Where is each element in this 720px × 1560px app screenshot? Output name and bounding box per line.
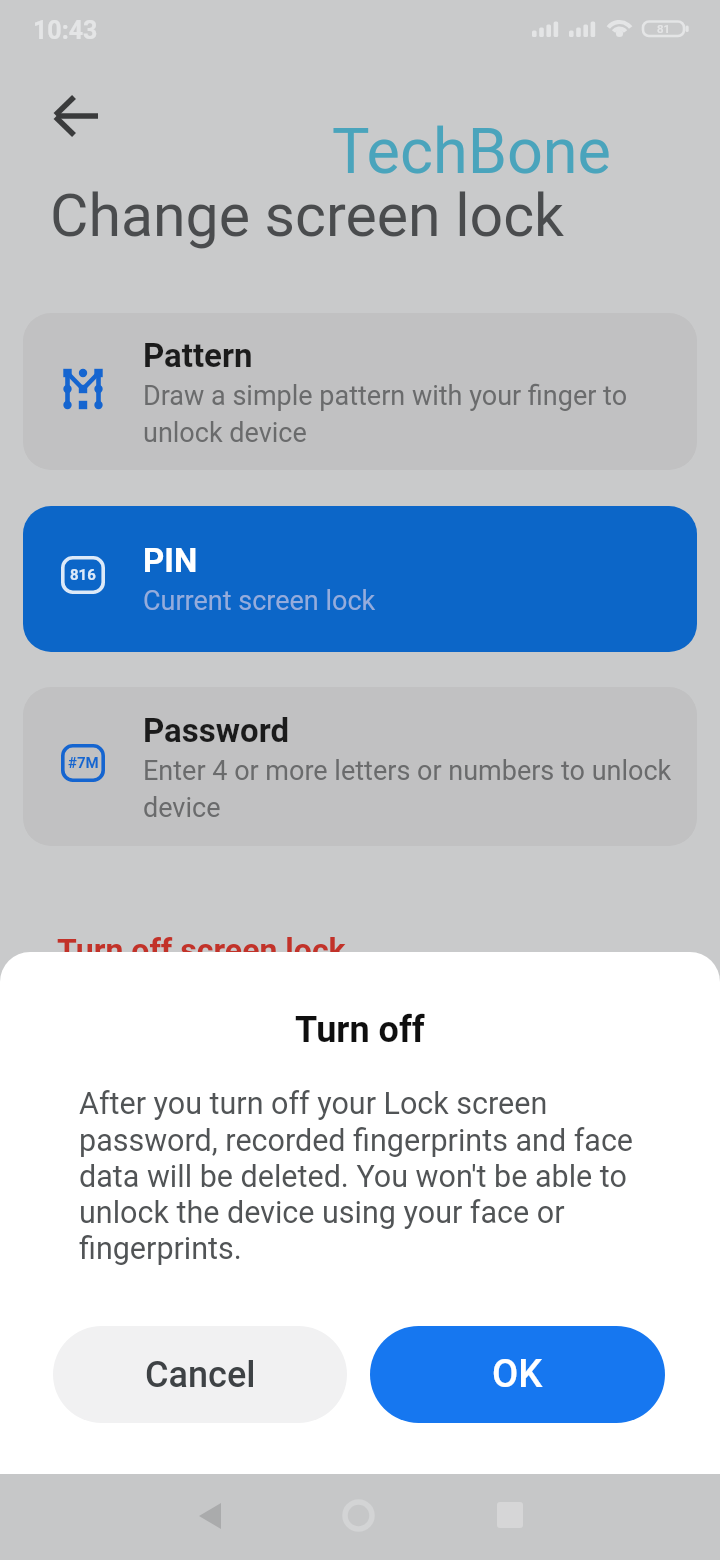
staticText: Change screen lock bbox=[50, 181, 564, 250]
staticText: Cancel bbox=[145, 1354, 256, 1396]
button[interactable] bbox=[333, 1490, 385, 1544]
staticText: After you turn off your Lock screen pass… bbox=[79, 1086, 634, 1266]
button[interactable]: Pattern bbox=[23, 313, 697, 470]
staticText: 81 bbox=[657, 22, 671, 35]
staticText: Draw a simple pattern with your finger t… bbox=[143, 380, 628, 448]
button[interactable]: OK bbox=[370, 1326, 665, 1423]
staticText: Pattern bbox=[143, 336, 253, 375]
button[interactable]: Turn off screen lock bbox=[57, 931, 346, 969]
button[interactable]: Cancel bbox=[53, 1326, 347, 1423]
staticText: Enter 4 or more letters or numbers to un… bbox=[143, 755, 672, 823]
button[interactable] bbox=[485, 1490, 535, 1544]
staticText: 816 bbox=[70, 566, 96, 584]
staticText: TechBone bbox=[332, 115, 612, 189]
button[interactable] bbox=[45, 90, 109, 142]
staticText: PIN bbox=[143, 541, 198, 580]
button[interactable]: #7M bbox=[23, 687, 697, 846]
staticText: Turn off bbox=[295, 1009, 425, 1051]
staticText: Current screen lock bbox=[143, 585, 376, 617]
button[interactable] bbox=[185, 1490, 235, 1544]
staticText: 10:43 bbox=[33, 16, 98, 45]
staticText: OK bbox=[492, 1352, 543, 1397]
staticText: #7M bbox=[68, 754, 99, 772]
staticText: Password bbox=[143, 711, 290, 750]
button[interactable]: 816 bbox=[23, 506, 697, 652]
